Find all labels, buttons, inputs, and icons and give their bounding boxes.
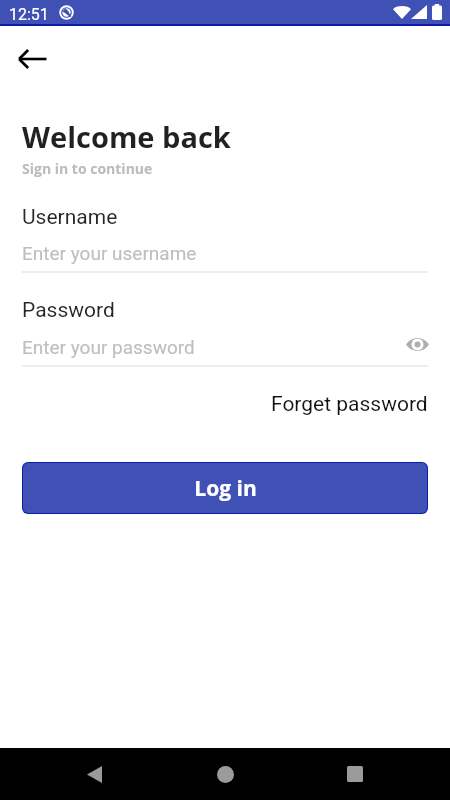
staticText: Log in xyxy=(194,474,257,503)
button[interactable]: Forget password xyxy=(271,386,450,423)
button[interactable]: Home xyxy=(201,750,249,798)
button[interactable]: Back xyxy=(10,37,54,81)
staticText: Password xyxy=(22,298,115,323)
staticText: Sign in to continue xyxy=(22,159,153,178)
button[interactable]: Log in xyxy=(23,463,427,513)
staticText: Forget password xyxy=(271,392,428,417)
staticText: Enter your password xyxy=(22,336,195,358)
button[interactable]: Show password xyxy=(402,330,432,358)
staticText: Enter your username xyxy=(22,242,197,264)
staticText: Username xyxy=(22,205,118,230)
staticText: 12:51 xyxy=(9,5,49,24)
button[interactable]: Enter your username xyxy=(22,242,428,273)
button[interactable]: Enter your password xyxy=(22,336,428,367)
staticText: Welcome back xyxy=(22,117,231,156)
button[interactable]: Back xyxy=(70,750,118,798)
button[interactable]: Recent apps xyxy=(331,750,379,798)
